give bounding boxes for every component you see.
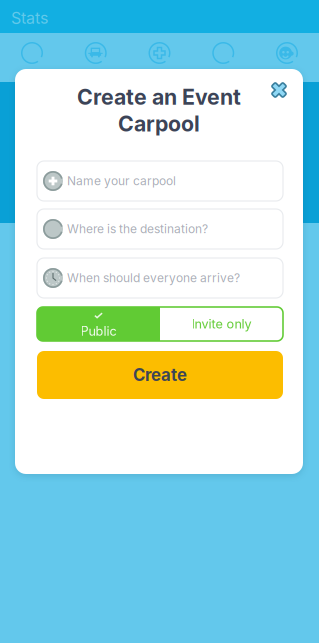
- button[interactable]: Profile: [255, 33, 319, 82]
- button[interactable]: Create: [37, 351, 283, 399]
- staticText: Name your carpool: [67, 174, 176, 188]
- staticText: Public: [80, 323, 116, 339]
- button[interactable]: Close: [263, 75, 295, 105]
- button[interactable]: Create: [128, 33, 191, 82]
- staticText: Stats: [11, 8, 48, 28]
- button[interactable]: Groups: [191, 33, 255, 82]
- staticText: Carpool: [118, 111, 200, 137]
- staticText: Create an Event: [77, 84, 241, 110]
- button[interactable]: Invite only: [160, 307, 283, 341]
- staticText: When should everyone arrive?: [67, 271, 240, 285]
- staticText: Invite only: [191, 316, 251, 332]
- staticText: Create: [133, 365, 187, 385]
- button[interactable]: When should everyone arrive?: [37, 258, 283, 298]
- button[interactable]: Stats: [0, 33, 64, 82]
- staticText: Where is the destination?: [67, 222, 208, 236]
- button[interactable]: Rides: [64, 33, 128, 82]
- button[interactable]: Name your carpool: [37, 161, 283, 201]
- button[interactable]: Where is the destination?: [37, 209, 283, 249]
- button[interactable]: Public: [37, 307, 160, 341]
